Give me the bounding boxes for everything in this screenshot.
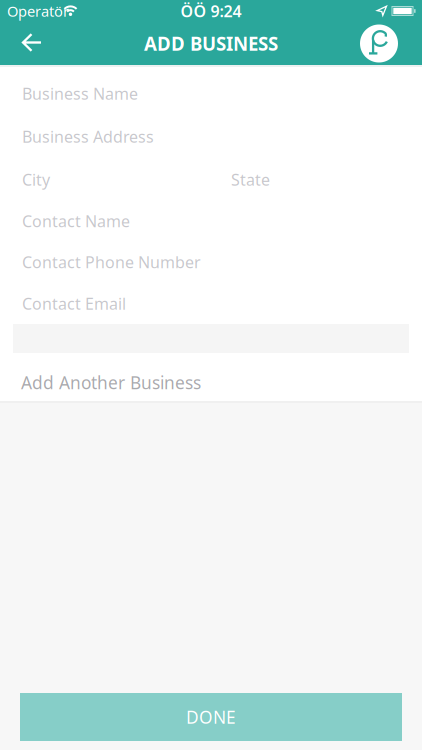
- staticText: ÖÖ 9:24: [180, 0, 241, 22]
- staticText: DONE: [186, 705, 236, 728]
- button[interactable]: Profile: [360, 24, 398, 62]
- staticText: Business Address: [22, 126, 154, 147]
- button[interactable]: DONE: [20, 693, 402, 741]
- staticText: Contact Email: [22, 293, 126, 314]
- staticText: Operatör: [7, 1, 69, 21]
- button[interactable]: Add Another Business: [0, 371, 201, 394]
- staticText: Contact Name: [22, 210, 130, 232]
- staticText: ADD BUSINESS: [144, 31, 278, 56]
- staticText: Business Name: [22, 83, 138, 104]
- staticText: Contact Phone Number: [22, 251, 201, 273]
- staticText: State: [231, 169, 270, 190]
- staticText: City: [22, 169, 50, 190]
- staticText: Add Another Business: [21, 371, 201, 394]
- button[interactable]: Back: [0, 22, 44, 65]
